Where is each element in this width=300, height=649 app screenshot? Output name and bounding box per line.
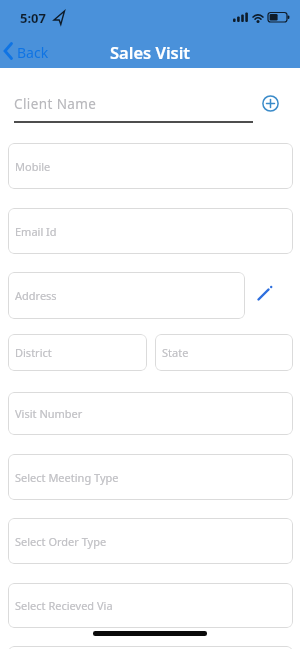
button[interactable]: Visit Number: [8, 392, 293, 435]
button[interactable]: Email Id: [8, 208, 293, 254]
button[interactable]: Back: [0, 38, 60, 66]
button[interactable]: Select Order Type: [8, 518, 293, 564]
button[interactable]: Select Meeting Type: [8, 454, 293, 500]
button[interactable]: Mobile: [8, 143, 293, 189]
staticText: Select Order Type: [15, 534, 107, 549]
button[interactable]: [8, 646, 293, 649]
staticText: Mobile: [15, 159, 51, 174]
staticText: 5:07: [20, 9, 46, 27]
button[interactable]: Select Recieved Via: [8, 583, 293, 628]
staticText: Select Recieved Via: [15, 598, 113, 613]
button[interactable]: Client Name: [8, 86, 258, 124]
staticText: Select Meeting Type: [15, 470, 119, 485]
staticText: Address: [15, 288, 57, 303]
staticText: Back: [17, 43, 49, 62]
staticText: Visit Number: [15, 406, 83, 421]
staticText: Email Id: [15, 224, 57, 239]
button[interactable]: District: [8, 334, 147, 371]
staticText: Client Name: [14, 95, 97, 113]
button[interactable]: [262, 95, 279, 112]
button[interactable]: Address: [8, 272, 245, 319]
button[interactable]: [254, 283, 276, 305]
staticText: District: [15, 345, 52, 360]
button[interactable]: State: [155, 334, 293, 371]
staticText: State: [162, 345, 189, 360]
staticText: Sales Visit: [110, 41, 191, 63]
